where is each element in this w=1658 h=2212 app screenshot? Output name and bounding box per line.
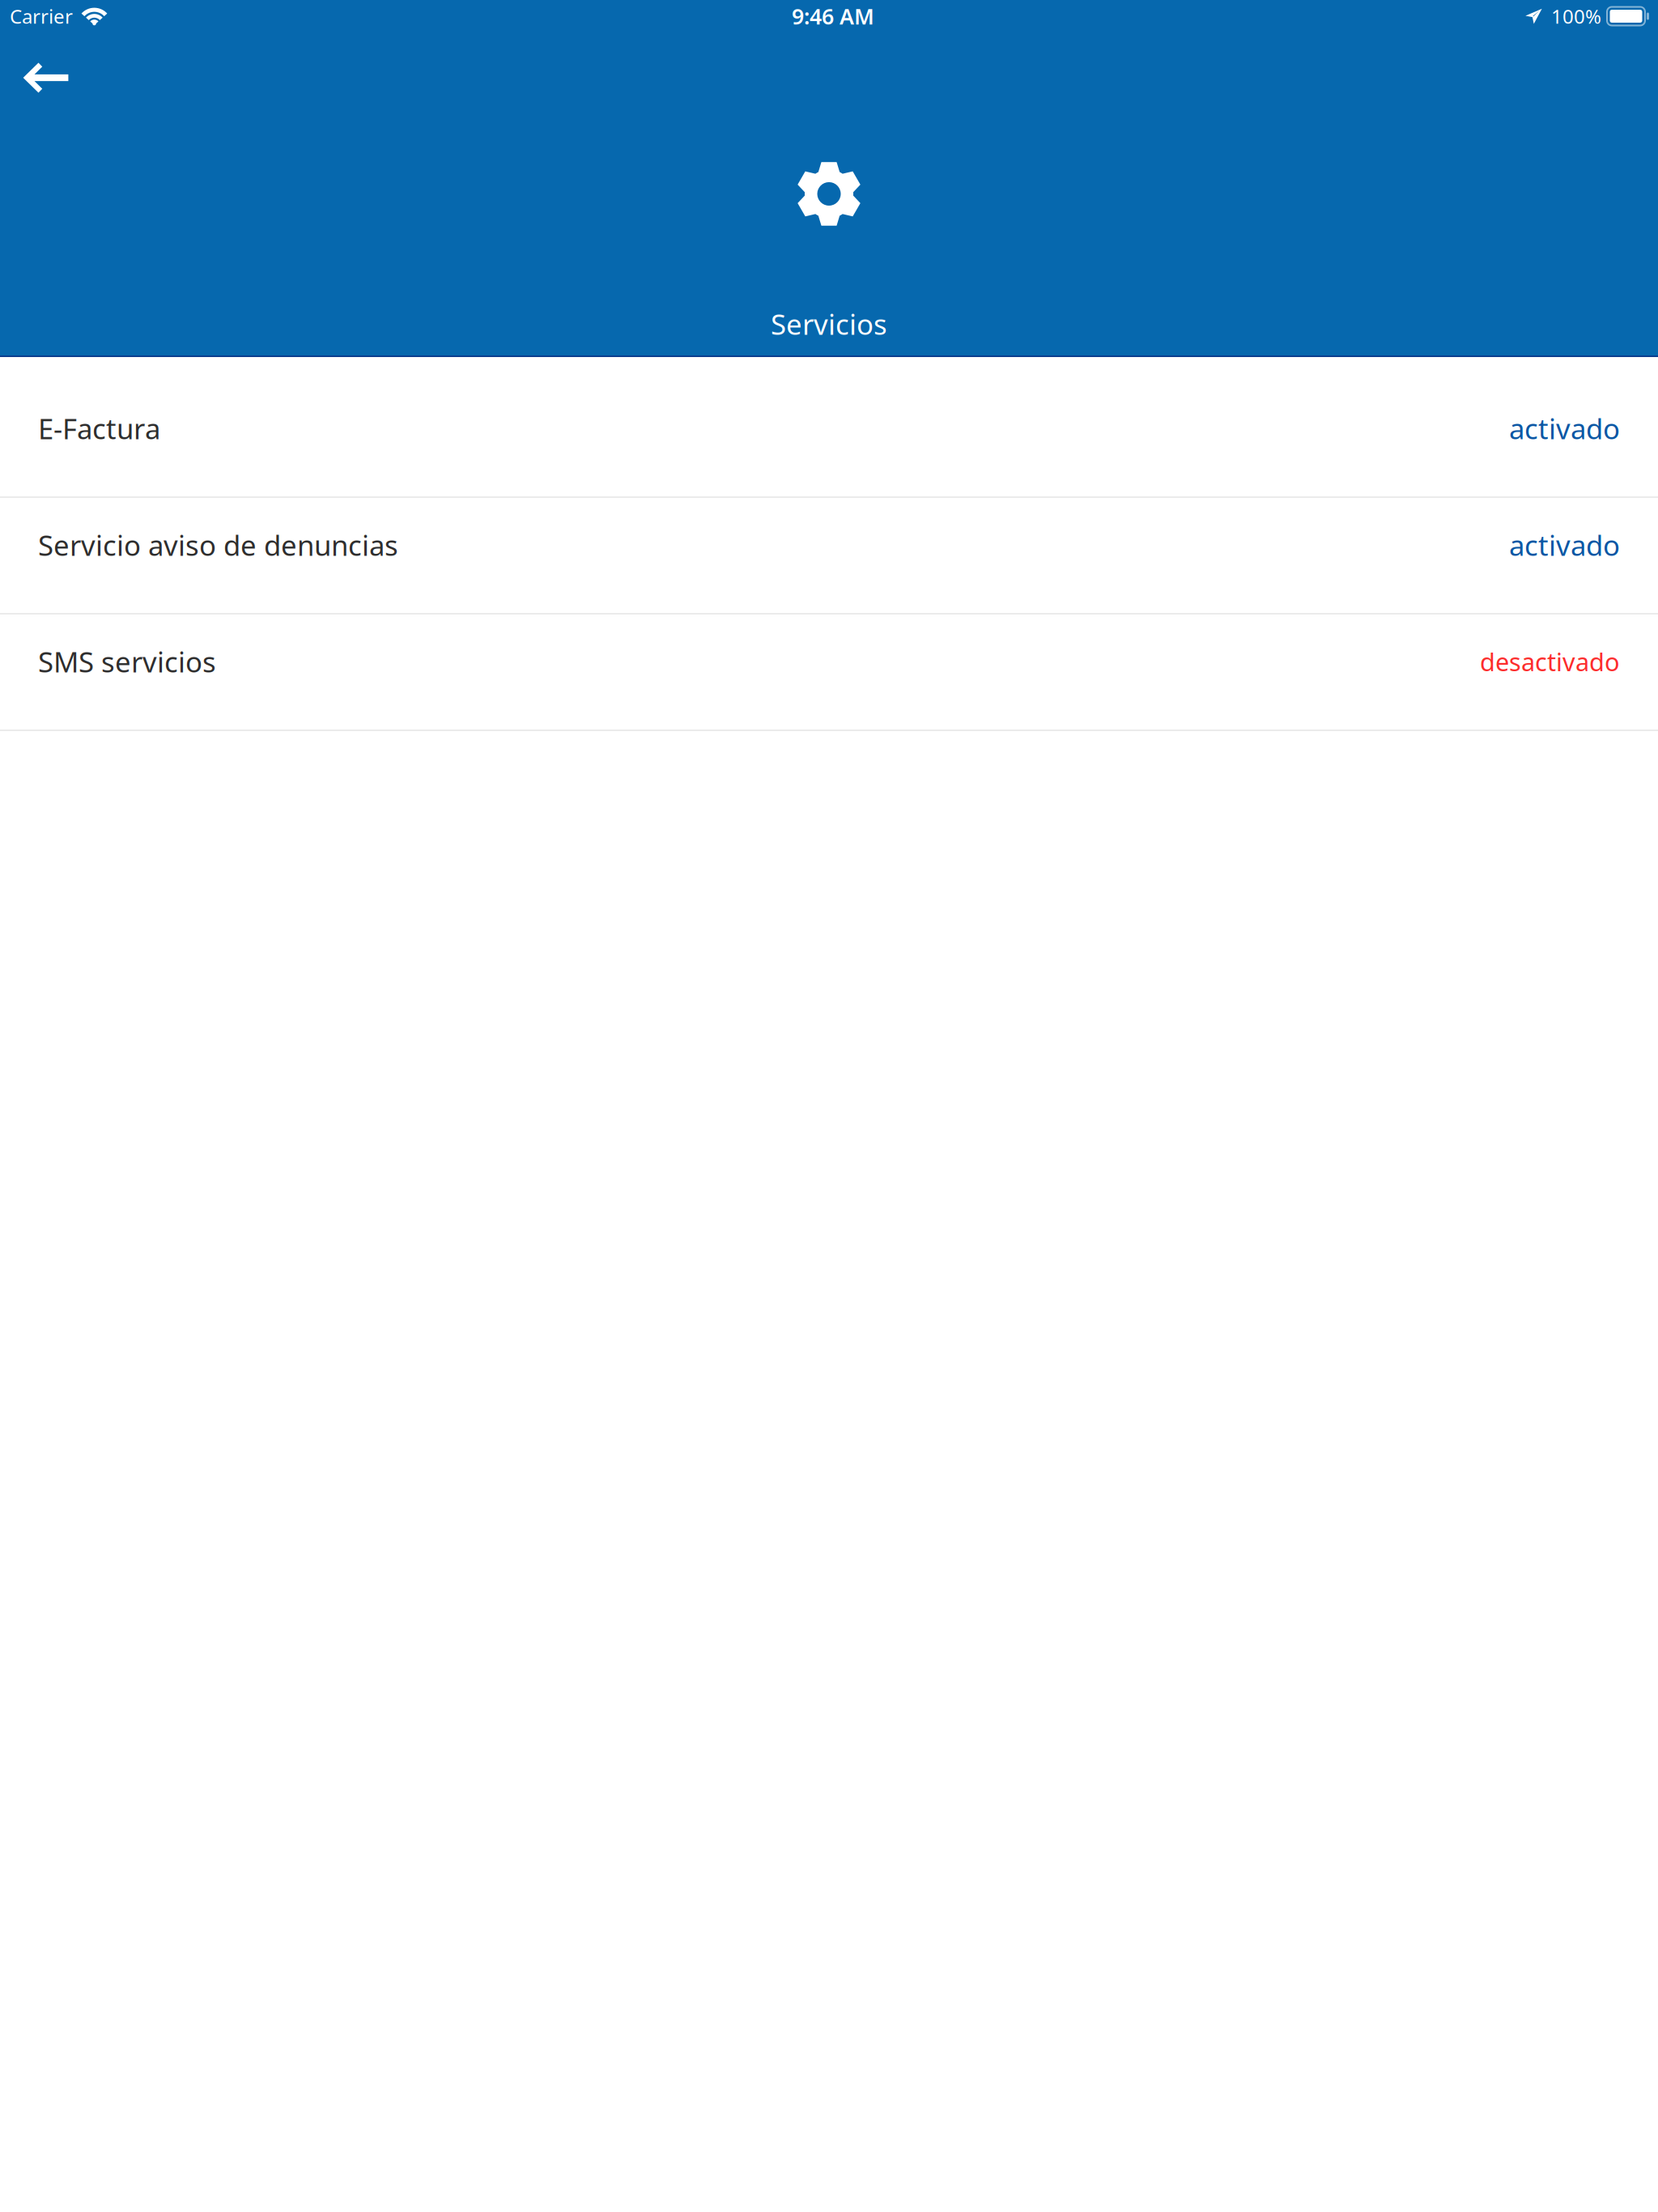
- button[interactable]: E-Factura: [0, 381, 1658, 498]
- staticText: 9:46 AM: [792, 2, 874, 31]
- staticText: Carrier: [10, 3, 73, 29]
- staticText: Servicios: [771, 305, 887, 342]
- staticText: SMS servicios: [38, 643, 216, 680]
- button[interactable]: Back: [0, 32, 95, 113]
- staticText: desactivado: [1480, 645, 1620, 678]
- button[interactable]: SMS servicios: [0, 615, 1658, 731]
- button[interactable]: Servicio aviso de denuncias: [0, 498, 1658, 615]
- staticText: 100%: [1551, 3, 1601, 29]
- staticText: activado: [1509, 526, 1620, 564]
- staticText: activado: [1509, 410, 1620, 447]
- staticText: Servicio aviso de denuncias: [38, 526, 398, 564]
- staticText: E-Factura: [38, 410, 160, 447]
